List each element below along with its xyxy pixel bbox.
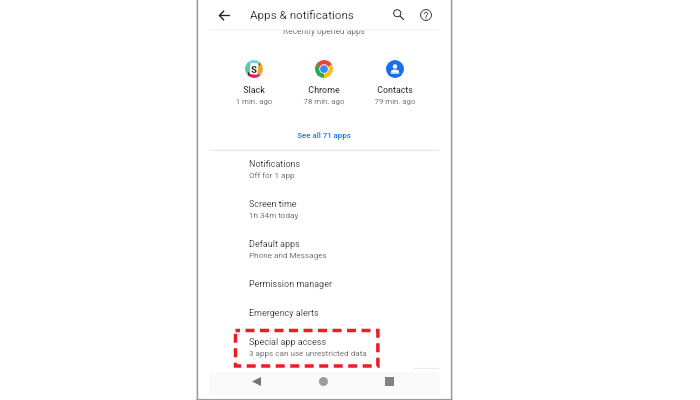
staticText: 3 apps can use unrestricted data <box>249 348 367 358</box>
button[interactable] <box>282 127 367 149</box>
staticText: Emergency alerts <box>249 308 319 319</box>
staticText: Notifications <box>249 159 301 170</box>
button[interactable] <box>360 55 430 107</box>
button[interactable]: Home <box>312 370 335 393</box>
staticText: Chrome <box>284 85 364 95</box>
button[interactable]: Search <box>385 1 412 28</box>
button[interactable] <box>209 272 440 301</box>
staticText: Recently opened apps <box>244 30 404 36</box>
staticText: Phone and Messages <box>249 250 327 260</box>
button[interactable] <box>219 55 289 107</box>
staticText: S <box>251 64 258 75</box>
staticText: Screen time <box>249 199 297 210</box>
staticText: Apps & notifications <box>250 8 354 22</box>
staticText: Default apps <box>249 239 300 250</box>
staticText: Slack <box>214 85 294 95</box>
staticText: 79 min. ago <box>355 97 435 106</box>
button[interactable] <box>209 330 440 368</box>
button[interactable]: Recents <box>378 370 401 393</box>
button[interactable] <box>209 192 440 232</box>
staticText: See all 71 apps <box>244 131 404 140</box>
staticText: 1 min. ago <box>214 97 294 106</box>
button[interactable]: Back <box>210 1 238 29</box>
staticText: 78 min. ago <box>284 97 364 106</box>
staticText: 1h 34m today <box>249 210 299 220</box>
button[interactable] <box>289 55 359 107</box>
staticText: Contacts <box>355 85 435 95</box>
button[interactable]: Help <box>412 1 439 28</box>
staticText: Off for 1 app <box>249 170 295 180</box>
button[interactable] <box>209 152 440 192</box>
button[interactable] <box>209 301 440 330</box>
staticText: Special app access <box>249 337 327 348</box>
button[interactable] <box>209 232 440 272</box>
staticText: Permission manager <box>249 279 333 290</box>
button[interactable]: Back <box>245 370 268 393</box>
